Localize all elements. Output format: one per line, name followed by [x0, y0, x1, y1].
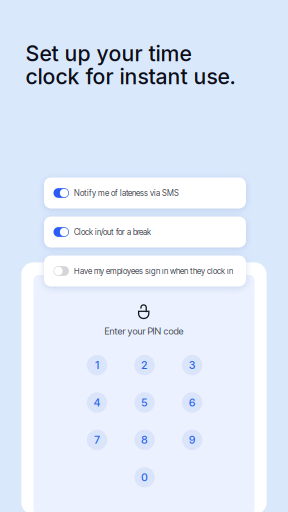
staticText: 9	[189, 433, 196, 446]
button[interactable]: 1	[87, 355, 107, 375]
button[interactable]: 0	[134, 467, 155, 487]
button[interactable]: 7	[87, 430, 107, 450]
button[interactable]: 2	[134, 355, 155, 375]
button[interactable]: 4	[87, 392, 107, 413]
staticText: 2	[141, 359, 148, 371]
staticText: Have my employees sign in when they cloc…	[74, 266, 233, 276]
staticText: 8	[141, 433, 148, 446]
staticText: clock for instant use.	[26, 64, 236, 89]
staticText: 3	[189, 359, 196, 371]
button[interactable]: 6	[182, 392, 202, 413]
staticText: 1	[95, 359, 99, 371]
staticText: 0	[141, 471, 148, 484]
button[interactable]: 9	[182, 430, 202, 450]
staticText: 5	[141, 396, 148, 409]
staticText: 4	[93, 396, 100, 409]
staticText: Enter your PIN code	[104, 325, 183, 337]
button[interactable]: Have my employees sign in when they cloc…	[44, 255, 246, 286]
staticText: 6	[189, 396, 196, 409]
staticText: Set up your time	[26, 41, 192, 66]
staticText: 7	[94, 433, 100, 446]
staticText: Notify me of lateness via SMS	[74, 188, 179, 198]
button[interactable]: Clock in/out for a break	[44, 216, 246, 247]
staticText: Clock in/out for a break	[74, 227, 151, 237]
button[interactable]: 8	[134, 430, 155, 450]
button[interactable]: Notify me of lateness via SMS	[44, 177, 246, 208]
button[interactable]: 3	[182, 355, 202, 375]
button[interactable]: 5	[134, 392, 155, 413]
